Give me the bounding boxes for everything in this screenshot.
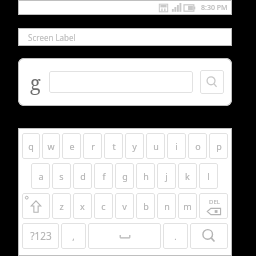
button[interactable]: f [94,163,113,189]
staticText: y [132,140,137,152]
button[interactable]: Shift [22,193,50,219]
staticText: l [207,170,210,182]
button[interactable]: z [52,193,71,219]
staticText: o [195,140,201,152]
button[interactable]: m [178,193,197,219]
staticText: g [30,69,41,96]
button[interactable]: b [136,193,155,219]
button[interactable]: y [125,133,144,159]
button[interactable]: t [104,133,123,159]
staticText: 8:30 PM [201,3,228,13]
staticText: m [183,200,192,212]
staticText: h [143,170,149,182]
button[interactable]: v [115,193,134,219]
button[interactable]: Screen Label [18,28,232,46]
staticText: a [38,170,44,182]
button[interactable]: w [42,133,60,159]
button[interactable]: n [157,193,176,219]
button[interactable]: k [178,163,197,189]
staticText: q [28,140,34,152]
button[interactable]: . [163,223,188,249]
staticText: u [153,140,159,152]
staticText: b [143,200,149,212]
staticText: ?123 [30,229,52,243]
button[interactable]: i [167,133,186,159]
button[interactable]: p [209,133,228,159]
button[interactable]: j [157,163,176,189]
button[interactable]: e [62,133,81,159]
button[interactable]: , [61,223,86,249]
button[interactable]: d [73,163,92,189]
staticText: t [112,140,116,152]
button[interactable]: g [115,163,134,189]
staticText: w [47,140,55,152]
staticText: e [69,140,75,152]
staticText: n [164,200,170,212]
button[interactable]: Search [200,70,224,94]
button[interactable]: s [52,163,71,189]
button[interactable]: o [188,133,207,159]
staticText: , [72,230,75,242]
staticText: g [122,170,128,182]
staticText: r [91,140,95,152]
button[interactable]: c [94,193,113,219]
button[interactable]: Search [190,223,228,249]
button[interactable]: h [136,163,155,189]
staticText: d [80,170,86,182]
staticText: c [101,200,106,212]
staticText: s [59,170,64,182]
staticText: DEL [209,198,220,206]
staticText: p [216,140,222,152]
button[interactable]: ?123 [22,223,59,249]
button[interactable] [49,71,193,93]
staticText: k [185,170,190,182]
staticText: Screen Label [28,32,76,43]
staticText: . [174,230,177,242]
button[interactable]: l [199,163,218,189]
button[interactable]: a [31,163,50,189]
staticText: i [175,140,178,152]
button[interactable]: x [73,193,92,219]
staticText: z [59,200,64,212]
button[interactable]: r [83,133,102,159]
staticText: f [102,170,106,182]
button[interactable]: u [146,133,165,159]
button[interactable]: q [22,133,40,159]
staticText: x [80,200,85,212]
staticText: j [165,170,168,182]
button[interactable]: g [18,58,232,106]
button[interactable]: Delete [199,193,228,219]
staticText: v [122,200,127,212]
button[interactable]: Space [88,223,161,249]
